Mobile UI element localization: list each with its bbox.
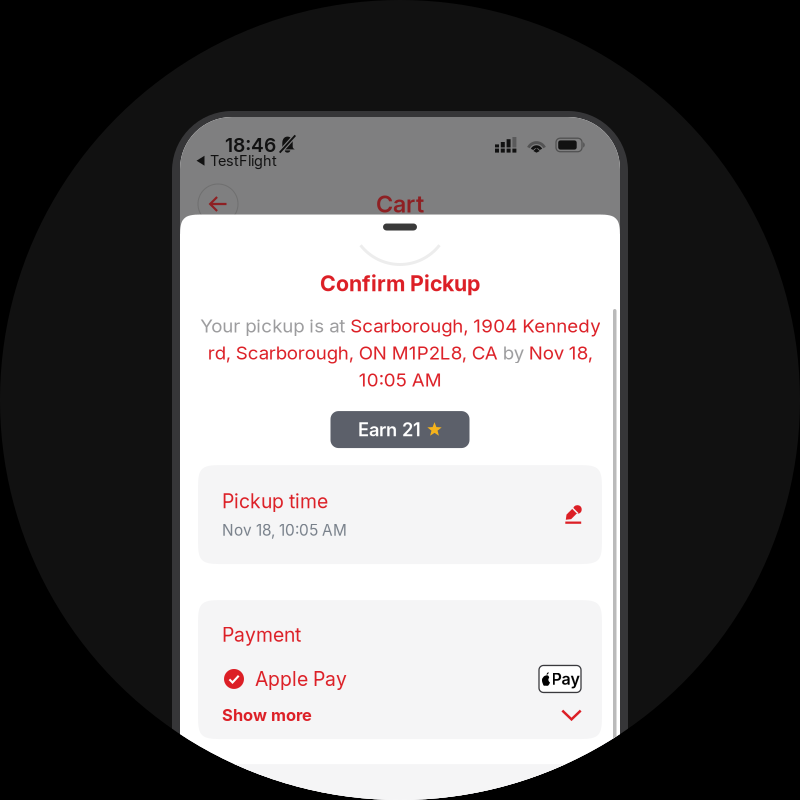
- button[interactable]: Earn 21: [330, 411, 469, 448]
- staticText: Your pickup is at Scarborough, 1904 Kenn…: [200, 314, 600, 391]
- staticText: Apple Pay: [255, 667, 347, 691]
- staticText: Pay: [551, 669, 579, 689]
- staticText: Earn 21: [358, 418, 421, 441]
- staticText: Pickup time: [222, 490, 328, 513]
- staticText: Payment: [222, 623, 301, 646]
- staticText: Show more: [222, 705, 312, 725]
- button[interactable]: Back: [196, 182, 240, 226]
- staticText: 18:46: [225, 133, 276, 157]
- staticText: TestFlight: [210, 152, 277, 169]
- button[interactable]: Show more: [198, 692, 602, 737]
- staticText: Confirm Pickup: [320, 270, 480, 296]
- button[interactable]: Pickup time: [198, 465, 602, 564]
- staticText: Nov 18, 10:05 AM: [222, 521, 347, 540]
- staticText: Cart: [376, 190, 424, 218]
